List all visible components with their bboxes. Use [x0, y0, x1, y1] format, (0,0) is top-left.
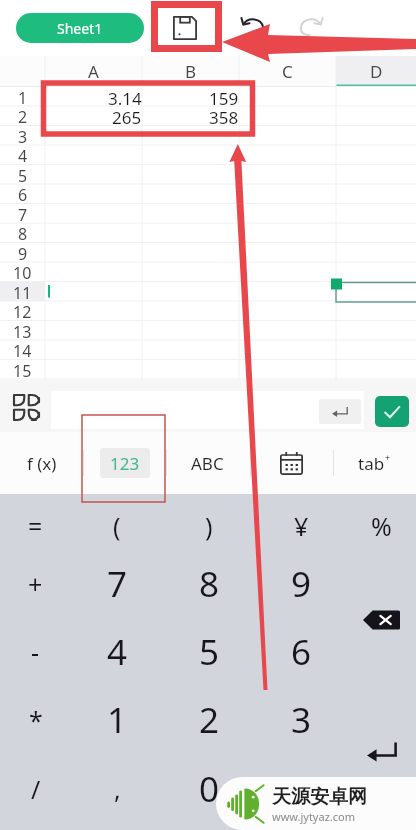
staticText: 7: [107, 560, 128, 608]
button[interactable]: tab: [333, 432, 416, 494]
staticText: 11: [13, 282, 32, 302]
staticText: f (x): [27, 452, 57, 475]
staticText: 15: [13, 360, 32, 380]
button[interactable]: ): [163, 498, 255, 554]
staticText: 358: [209, 106, 239, 126]
button[interactable]: 9: [255, 554, 347, 614]
staticText: 12: [13, 301, 32, 321]
button[interactable]: 1: [71, 690, 163, 750]
button[interactable]: Undo: [232, 6, 276, 50]
staticText: 0: [199, 765, 220, 813]
staticText: 9: [291, 560, 312, 608]
button[interactable]: 6: [255, 614, 347, 690]
staticText: 1: [107, 696, 128, 744]
button[interactable]: 7: [71, 554, 163, 614]
staticText: 3: [291, 696, 312, 744]
staticText: (: [113, 509, 121, 543]
button[interactable]: Redo: [288, 6, 332, 50]
staticText: 3: [18, 126, 28, 146]
button[interactable]: (: [71, 498, 163, 554]
staticText: 14: [13, 340, 32, 360]
staticText: 123: [110, 452, 140, 475]
staticText: 6: [18, 184, 28, 204]
staticText: B: [185, 60, 197, 83]
button[interactable]: =: [0, 498, 71, 554]
staticText: 2: [199, 696, 220, 744]
staticText: +: [385, 451, 391, 463]
staticText: +: [28, 567, 43, 601]
staticText: ¥: [294, 509, 309, 543]
button[interactable]: 123: [83, 432, 166, 494]
staticText: 159: [209, 87, 239, 107]
staticText: 13: [13, 321, 32, 341]
staticText: 5: [199, 628, 220, 676]
button[interactable]: ABC: [166, 432, 249, 494]
staticText: 4: [18, 145, 28, 165]
staticText: www.jytyaz.com: [272, 809, 355, 824]
button[interactable]: ¥: [255, 498, 347, 554]
button[interactable]: 8: [163, 554, 255, 614]
button[interactable]: ,: [71, 750, 163, 828]
button[interactable]: %: [347, 498, 416, 554]
button[interactable]: Sheet1: [16, 13, 144, 43]
button[interactable]: Formula input: [51, 391, 364, 429]
button[interactable]: 0: [163, 750, 255, 828]
staticText: 9: [18, 243, 28, 263]
button[interactable]: +: [0, 554, 71, 614]
button[interactable]: Enter: [347, 686, 416, 818]
button[interactable]: *: [0, 690, 71, 750]
button[interactable]: /: [0, 750, 71, 828]
button[interactable]: 4: [71, 614, 163, 690]
button[interactable]: Cell tools: [10, 391, 42, 423]
staticText: 5: [18, 165, 28, 185]
button[interactable]: 2: [163, 690, 255, 750]
staticText: 4: [107, 628, 128, 676]
button[interactable]: [250, 432, 333, 494]
staticText: 6: [291, 628, 312, 676]
staticText: 8: [199, 560, 220, 608]
staticText: 10: [13, 262, 32, 282]
button[interactable]: f (x): [0, 432, 83, 494]
staticText: Sheet1: [57, 19, 103, 38]
staticText: ): [205, 509, 213, 543]
staticText: 3.14: [108, 87, 142, 107]
button[interactable]: -: [0, 614, 71, 690]
staticText: 2: [18, 106, 28, 126]
staticText: 265: [112, 106, 142, 126]
staticText: /: [31, 772, 41, 806]
button[interactable]: 5: [163, 614, 255, 690]
button[interactable]: 3: [255, 690, 347, 750]
staticText: D: [370, 60, 383, 83]
button[interactable]: New line: [319, 399, 361, 424]
button[interactable]: Save: [165, 8, 205, 48]
staticText: %: [371, 509, 392, 543]
button[interactable]: Confirm: [375, 396, 409, 427]
staticText: 1: [18, 87, 28, 107]
staticText: 天源安卓网: [272, 785, 367, 809]
staticText: ABC: [191, 452, 224, 475]
staticText: =: [28, 509, 43, 543]
staticText: ,: [114, 772, 121, 806]
staticText: 7: [18, 204, 28, 224]
staticText: tab: [358, 452, 385, 475]
staticText: A: [88, 60, 99, 83]
staticText: *: [29, 703, 43, 737]
button[interactable]: Backspace: [347, 554, 416, 686]
staticText: -: [31, 635, 40, 669]
staticText: C: [282, 60, 293, 83]
staticText: 8: [18, 223, 28, 243]
